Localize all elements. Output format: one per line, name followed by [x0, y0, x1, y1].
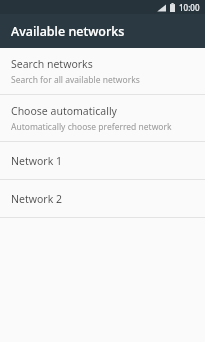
staticText: Search for all available networks: [11, 74, 140, 86]
staticText: Choose automatically: [11, 104, 117, 118]
button[interactable]: Search networks: [0, 48, 205, 94]
other: Battery: [170, 3, 175, 12]
staticText: Network 1: [11, 154, 62, 168]
staticText: Automatically choose preferred network: [11, 121, 172, 133]
staticText: Available networks: [11, 23, 125, 40]
other: Signal strength: [157, 4, 166, 12]
button[interactable]: Network 2: [0, 180, 205, 217]
button[interactable]: Network 1: [0, 142, 205, 179]
staticText: 10:00: [179, 2, 200, 13]
staticText: Search networks: [11, 57, 93, 71]
staticText: Network 2: [11, 192, 62, 206]
button[interactable]: Choose automatically: [0, 95, 205, 141]
